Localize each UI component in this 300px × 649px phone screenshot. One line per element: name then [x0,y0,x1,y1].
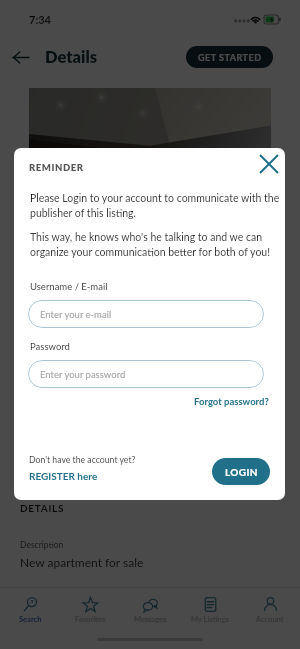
staticText: Enter your e-mail [40,309,112,320]
staticText: LOGIN [225,466,258,478]
button[interactable]: My Listings [180,588,240,632]
staticText: New apartment for sale [20,555,144,569]
button[interactable]: Favorites [60,588,120,632]
staticText: Enter your password [40,369,126,380]
button[interactable]: Enter your e-mail [28,300,264,328]
button[interactable]: Back [6,42,36,72]
staticText: REMINDER [29,162,84,173]
staticText: This way, he knows who's he talking to a… [30,231,271,259]
button[interactable]: Enter your password [28,360,264,388]
staticText: Password [30,341,70,352]
staticText: DETAILS [20,502,65,514]
button[interactable]: Search [0,588,60,632]
button[interactable]: Forgot password? [194,396,285,407]
staticText: Messages [134,615,167,624]
staticText: GET STARTED [198,52,262,63]
button[interactable]: Account [240,588,300,632]
button[interactable]: LOGIN [212,458,270,485]
staticText: Favorites [75,615,106,624]
staticText: Don't have the account yet? [29,454,136,464]
staticText: Username / E-mail [30,281,108,292]
staticText: Details [45,47,98,67]
staticText: Search [19,615,42,624]
staticText: Account [256,615,284,624]
button[interactable]: Close [255,150,283,178]
button[interactable]: REGISTER here [29,470,98,482]
staticText: My Listings [191,615,229,624]
button[interactable]: GET STARTED [186,46,273,68]
staticText: Description [20,540,64,550]
staticText: Please Login to your account to communic… [30,192,280,220]
staticText: 7:34 [29,13,51,26]
button[interactable]: Messages [120,588,180,632]
